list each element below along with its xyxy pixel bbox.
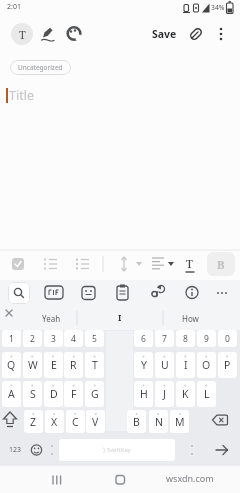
staticText: V (92, 415, 99, 429)
staticText: 34% (211, 3, 225, 12)
button[interactable] (8, 282, 30, 304)
button[interactable]: F (64, 381, 83, 407)
staticText: wsxdn.com (166, 472, 214, 484)
button[interactable] (210, 439, 234, 461)
button[interactable] (146, 282, 168, 304)
button[interactable]: R (64, 352, 83, 378)
button[interactable]: S (23, 381, 42, 407)
button[interactable]: 1 (2, 330, 21, 347)
button[interactable]: ⟩ SwiftKey (59, 439, 175, 461)
button[interactable]: T (11, 23, 33, 45)
staticText: 4 (71, 333, 76, 345)
button[interactable]: 7 (155, 330, 174, 347)
button[interactable]: 0 (218, 330, 237, 347)
staticText: C (72, 415, 79, 429)
button[interactable]: Y (134, 352, 153, 378)
button[interactable]: Z (24, 410, 43, 433)
button[interactable] (64, 24, 84, 44)
staticText: K (182, 387, 189, 401)
button[interactable] (72, 253, 93, 275)
button[interactable]: G (85, 381, 104, 407)
button[interactable]: C (66, 410, 85, 433)
button[interactable] (43, 282, 65, 304)
staticText: I (118, 312, 122, 324)
button[interactable]: 6 (134, 330, 153, 347)
button[interactable]: P (218, 352, 237, 378)
button[interactable] (78, 282, 100, 304)
button[interactable]: E (44, 352, 63, 378)
button[interactable]: Yeah (28, 306, 74, 330)
staticText: U (161, 358, 169, 372)
button[interactable]: Save (146, 25, 182, 43)
button[interactable] (2, 306, 24, 330)
button[interactable] (203, 410, 236, 433)
button[interactable] (2, 410, 22, 433)
button[interactable]: 8 (176, 330, 195, 347)
staticText: D (50, 387, 58, 401)
staticText: M (175, 415, 185, 429)
button[interactable]: L (197, 381, 216, 407)
button[interactable] (212, 24, 230, 44)
button[interactable] (187, 24, 207, 44)
button[interactable]: A (2, 381, 21, 407)
button[interactable]: B (127, 410, 146, 433)
button[interactable] (40, 253, 61, 275)
button[interactable]: I (97, 306, 143, 330)
button[interactable]: U (155, 352, 174, 378)
staticText: J (163, 387, 166, 401)
staticText: Uncategorized (18, 63, 63, 72)
staticText: F (71, 387, 77, 401)
button[interactable]: V (86, 410, 105, 433)
button[interactable]: W (23, 352, 42, 378)
button[interactable]: H (134, 381, 153, 407)
staticText: 1 (9, 333, 14, 345)
button[interactable]: X (45, 410, 64, 433)
staticText: 8 (183, 333, 188, 345)
button[interactable]: 3 (44, 330, 63, 347)
button[interactable]: 2 (23, 330, 42, 347)
staticText: S (30, 387, 36, 401)
staticText: X (51, 415, 58, 429)
button[interactable]: K (176, 381, 195, 407)
button[interactable] (38, 24, 58, 44)
staticText: T (92, 358, 98, 372)
staticText: N (155, 415, 163, 429)
button[interactable]: N (149, 410, 168, 433)
button[interactable]: D (44, 381, 63, 407)
button[interactable]: 4 (64, 330, 83, 347)
staticText: T (186, 256, 193, 271)
staticText: Title (9, 87, 34, 104)
staticText: T (19, 27, 26, 42)
button[interactable] (8, 253, 29, 275)
staticText: 2 (30, 333, 35, 345)
button[interactable] (28, 439, 46, 461)
button[interactable]: J (155, 381, 174, 407)
button[interactable] (181, 282, 203, 304)
staticText: 7 (162, 333, 167, 345)
staticText: P (224, 358, 231, 372)
button[interactable] (114, 253, 144, 275)
button[interactable]: 5 (85, 330, 104, 347)
button[interactable] (146, 253, 176, 275)
button[interactable]: Uncategorized (10, 60, 71, 75)
button[interactable]: Q (2, 352, 21, 378)
staticText: 9 (204, 333, 209, 345)
button[interactable] (108, 468, 132, 492)
button[interactable] (180, 253, 200, 275)
button[interactable] (175, 468, 199, 492)
button[interactable]: M (170, 410, 189, 433)
button[interactable] (112, 282, 134, 304)
button[interactable]: O (197, 352, 216, 378)
button[interactable]: B (207, 252, 235, 276)
button[interactable]: I (176, 352, 195, 378)
button[interactable]: 123 (4, 439, 26, 461)
button[interactable]: How (167, 306, 213, 330)
button[interactable] (42, 468, 66, 492)
button[interactable]: T (85, 352, 104, 378)
staticText: 5 (92, 333, 97, 345)
staticText: 123 (9, 445, 22, 455)
button[interactable]: 9 (197, 330, 216, 347)
staticText: R (70, 358, 77, 372)
button[interactable] (215, 282, 237, 304)
button[interactable] (0, 84, 240, 106)
